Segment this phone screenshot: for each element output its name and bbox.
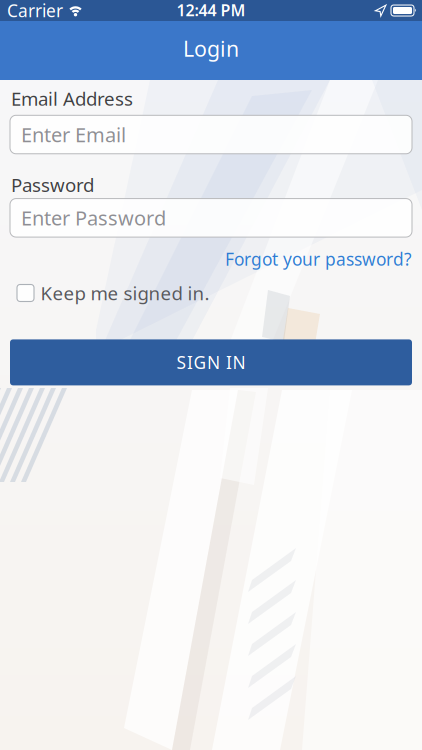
- staticText: Forgot your password?: [225, 248, 412, 271]
- staticText: Login: [183, 34, 239, 63]
- staticText: Email Address: [11, 86, 133, 111]
- staticText: Password: [11, 172, 94, 197]
- staticText: SIGN IN: [176, 351, 245, 374]
- staticText: Keep me signed in.: [40, 281, 209, 305]
- staticText: Enter Password: [21, 205, 166, 231]
- staticText: Enter Email: [21, 121, 126, 148]
- staticText: Carrier: [7, 0, 63, 22]
- staticText: 12:44 PM: [176, 0, 245, 21]
